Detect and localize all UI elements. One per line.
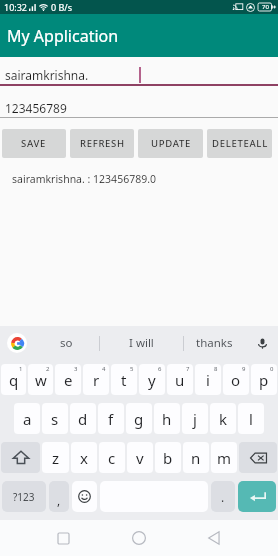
- button[interactable]: DELETEALL: [207, 129, 272, 158]
- staticText: f: [108, 409, 114, 429]
- staticText: j: [193, 409, 197, 429]
- button[interactable]: z: [42, 442, 69, 473]
- staticText: ?123: [13, 490, 35, 504]
- staticText: SAVE: [21, 137, 47, 150]
- staticText: so: [60, 335, 73, 351]
- staticText: .: [221, 489, 225, 505]
- staticText: 123456789: [5, 100, 67, 116]
- button[interactable]: m: [211, 442, 237, 473]
- staticText: 9: [242, 365, 246, 373]
- staticText: 7: [186, 365, 190, 373]
- button[interactable]: Recent apps: [39, 520, 88, 556]
- button[interactable]: so: [33, 326, 99, 360]
- staticText: h: [162, 409, 172, 429]
- button[interactable]: q: [1, 364, 26, 395]
- staticText: 2: [46, 365, 50, 373]
- staticText: z: [52, 448, 60, 468]
- staticText: k: [219, 409, 228, 429]
- staticText: v: [136, 448, 144, 468]
- button[interactable]: I will: [99, 326, 183, 360]
- button[interactable]: y: [139, 364, 165, 395]
- button[interactable]: n: [183, 442, 209, 473]
- button[interactable]: g: [126, 403, 152, 434]
- button[interactable]: w: [28, 364, 53, 395]
- button[interactable]: t: [111, 364, 137, 395]
- staticText: a: [23, 409, 32, 429]
- button[interactable]: .: [211, 481, 235, 512]
- button[interactable]: r: [83, 364, 109, 395]
- staticText: y: [148, 370, 156, 390]
- staticText: 8: [214, 365, 218, 373]
- button[interactable]: p: [251, 364, 277, 395]
- button[interactable]: d: [70, 403, 96, 434]
- button[interactable]: SAVE: [2, 129, 66, 158]
- staticText: u: [175, 370, 185, 390]
- staticText: b: [163, 448, 173, 468]
- staticText: o: [231, 370, 241, 390]
- button[interactable]: x: [71, 442, 97, 473]
- button[interactable]: j: [182, 403, 208, 434]
- staticText: t: [121, 370, 127, 390]
- button[interactable]: thanks: [183, 326, 246, 360]
- button[interactable]: REFRESH: [70, 129, 134, 158]
- staticText: UPDATE: [151, 137, 191, 150]
- button[interactable]: Google: [0, 326, 33, 360]
- staticText: 1: [19, 365, 23, 373]
- staticText: i: [206, 370, 210, 390]
- button[interactable]: u: [167, 364, 193, 395]
- staticText: 0: [270, 365, 274, 373]
- button[interactable]: Shift: [1, 442, 40, 473]
- button[interactable]: k: [210, 403, 236, 434]
- button[interactable]: e: [55, 364, 81, 395]
- button[interactable]: Emoji: [72, 481, 97, 512]
- staticText: 10:32: [4, 1, 28, 13]
- staticText: m: [217, 448, 232, 468]
- staticText: REFRESH: [80, 137, 125, 150]
- staticText: thanks: [196, 335, 233, 351]
- staticText: r: [93, 370, 100, 390]
- button[interactable]: Home: [114, 520, 164, 556]
- staticText: 6: [158, 365, 162, 373]
- button[interactable]: UPDATE: [138, 129, 203, 158]
- staticText: DELETEALL: [212, 137, 268, 150]
- button[interactable]: b: [155, 442, 181, 473]
- button[interactable]: Back: [189, 520, 239, 556]
- staticText: ,: [57, 492, 61, 508]
- button[interactable]: i: [195, 364, 221, 395]
- staticText: p: [259, 370, 269, 390]
- staticText: 5: [130, 365, 134, 373]
- staticText: I will: [129, 335, 154, 351]
- staticText: 70: [262, 3, 269, 11]
- staticText: 3: [74, 365, 78, 373]
- staticText: 4: [102, 365, 106, 373]
- button[interactable]: f: [98, 403, 124, 434]
- button[interactable]: s: [42, 403, 68, 434]
- button[interactable]: a: [14, 403, 40, 434]
- button[interactable]: c: [99, 442, 125, 473]
- staticText: s: [51, 409, 59, 429]
- staticText: w: [35, 370, 47, 390]
- staticText: e: [64, 370, 73, 390]
- staticText: c: [108, 448, 116, 468]
- staticText: sairamkrishna. : 123456789.0: [12, 172, 156, 186]
- staticText: sairamkrishna.: [5, 67, 89, 83]
- staticText: g: [134, 409, 144, 429]
- button[interactable]: o: [223, 364, 249, 395]
- staticText: l: [249, 409, 253, 429]
- button[interactable]: Voice input: [246, 326, 278, 360]
- button[interactable]: ,: [49, 481, 69, 512]
- button[interactable]: l: [238, 403, 264, 434]
- staticText: n: [191, 448, 201, 468]
- button[interactable]: h: [154, 403, 180, 434]
- button[interactable]: Enter: [238, 481, 276, 512]
- staticText: d: [78, 409, 88, 429]
- button[interactable]: ?123: [2, 481, 46, 512]
- staticText: My Application: [7, 25, 119, 47]
- staticText: 0 B/s: [51, 1, 72, 13]
- staticText: q: [9, 370, 19, 390]
- staticText: x: [80, 448, 88, 468]
- button[interactable]: Backspace: [239, 442, 277, 473]
- button[interactable]: v: [127, 442, 153, 473]
